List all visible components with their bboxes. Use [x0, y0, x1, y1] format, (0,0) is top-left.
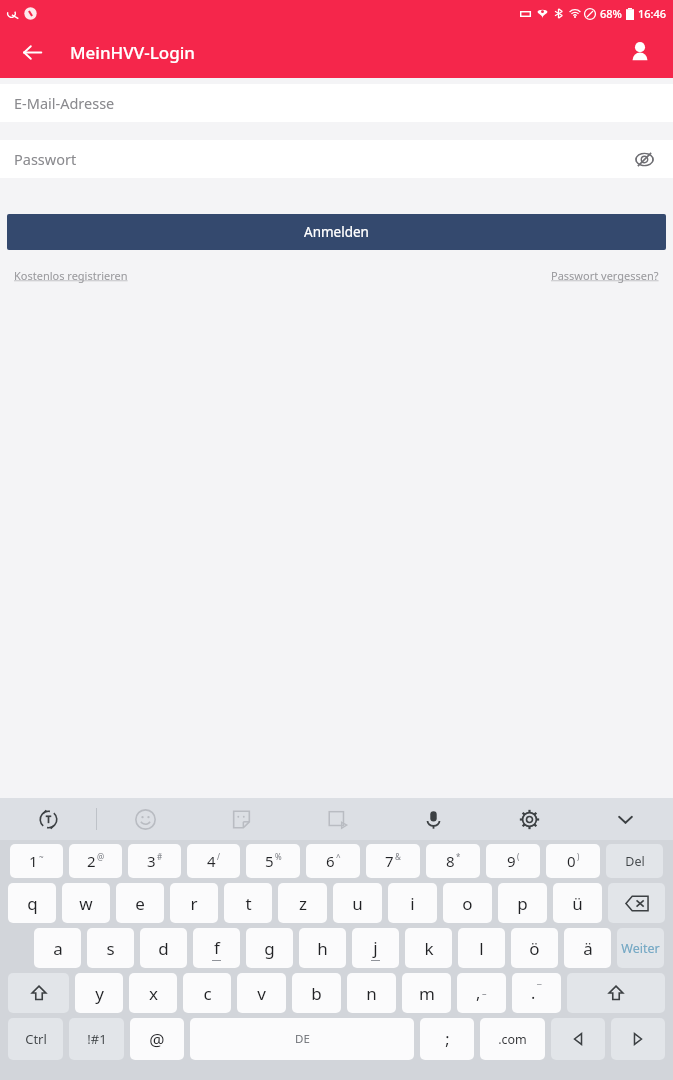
staticText: ^ — [336, 851, 341, 862]
staticText: w — [79, 892, 93, 915]
button[interactable]: k — [405, 928, 452, 968]
staticText: ~ — [39, 851, 44, 862]
button[interactable]: a — [34, 928, 81, 968]
button[interactable]: y — [75, 973, 123, 1013]
button[interactable]: d — [140, 928, 187, 968]
staticText: 68% — [600, 6, 622, 21]
button[interactable]: ö — [511, 928, 558, 968]
staticText: ö — [529, 937, 540, 960]
button[interactable]: Spracheingabe — [385, 798, 481, 840]
staticText: ) — [577, 851, 580, 862]
button[interactable]: 5 — [246, 844, 300, 878]
staticText: . — [531, 982, 536, 1004]
button[interactable]: p — [498, 883, 547, 923]
staticText: ¯ — [537, 982, 542, 994]
button[interactable]: v — [237, 973, 286, 1013]
button[interactable]: o — [443, 883, 492, 923]
button[interactable]: h — [299, 928, 346, 968]
button[interactable]: ü — [553, 883, 602, 923]
button[interactable]: t — [224, 883, 272, 923]
staticText: n — [366, 982, 377, 1005]
staticText: Passwort — [14, 149, 77, 169]
button[interactable]: Ctrl — [8, 1018, 63, 1060]
button[interactable]: Weiter — [617, 928, 664, 968]
staticText: y — [95, 982, 104, 1005]
button[interactable]: , — [457, 973, 506, 1013]
staticText: & — [395, 851, 401, 862]
staticText: s — [106, 937, 115, 960]
button[interactable]: Umschalt — [8, 973, 69, 1013]
button[interactable]: 9 — [486, 844, 540, 878]
button[interactable]: . — [512, 973, 561, 1013]
staticText: DE — [295, 1031, 310, 1047]
button[interactable]: @ — [130, 1018, 184, 1060]
staticText: ; — [445, 1028, 450, 1050]
button[interactable]: 0 — [546, 844, 600, 878]
button[interactable]: .com — [480, 1018, 545, 1060]
button[interactable]: Leertaste — [190, 1018, 414, 1060]
button[interactable]: !#1 — [69, 1018, 124, 1060]
button[interactable]: 8 — [426, 844, 480, 878]
button[interactable]: Anmelden — [7, 214, 666, 250]
staticText: MeinHVV-Login — [70, 41, 195, 64]
button[interactable]: Nach rechts — [611, 1018, 665, 1060]
staticText: 4 — [207, 851, 216, 871]
button[interactable]: Einstellungen — [481, 798, 577, 840]
staticText: r — [190, 892, 198, 915]
staticText: ( — [517, 851, 520, 862]
button[interactable]: 6 — [306, 844, 360, 878]
button[interactable]: 2 — [69, 844, 122, 878]
button[interactable]: Sticker — [193, 798, 289, 840]
button[interactable]: c — [183, 973, 231, 1013]
button[interactable]: s — [87, 928, 134, 968]
button[interactable]: Löschen — [606, 844, 663, 878]
button[interactable]: w — [62, 883, 110, 923]
button[interactable]: ; — [420, 1018, 474, 1060]
button[interactable]: g — [246, 928, 293, 968]
button[interactable]: Zurück — [12, 32, 52, 72]
button[interactable]: b — [292, 973, 341, 1013]
button[interactable]: Tastatur schließen — [577, 798, 673, 840]
button[interactable]: i — [388, 883, 437, 923]
staticText: c — [203, 982, 212, 1005]
button[interactable]: Passwort anzeigen — [629, 144, 659, 174]
button[interactable]: l — [458, 928, 505, 968]
staticText: d — [158, 937, 169, 960]
button[interactable]: Kostenlos registrieren — [14, 268, 128, 283]
button[interactable]: Emoji — [97, 798, 193, 840]
button[interactable]: x — [129, 973, 177, 1013]
staticText: / — [217, 851, 220, 862]
button[interactable]: f — [193, 928, 240, 968]
button[interactable]: r — [170, 883, 218, 923]
staticText: h — [317, 937, 328, 960]
staticText: .com — [498, 1031, 527, 1048]
button[interactable]: e — [116, 883, 164, 923]
staticText: k — [424, 937, 434, 960]
staticText: f — [214, 936, 220, 959]
button[interactable]: Passwort — [0, 140, 673, 178]
button[interactable]: u — [333, 883, 382, 923]
button[interactable]: 3 — [128, 844, 181, 878]
button[interactable]: n — [347, 973, 396, 1013]
button[interactable]: 4 — [187, 844, 240, 878]
button[interactable]: E-Mail-Adresse — [0, 84, 673, 122]
button[interactable]: Übersetzen — [0, 798, 96, 840]
staticText: – — [482, 987, 487, 999]
button[interactable]: GIF — [289, 798, 385, 840]
button[interactable]: 7 — [366, 844, 420, 878]
button[interactable]: j — [352, 928, 399, 968]
button[interactable]: z — [278, 883, 327, 923]
button[interactable]: m — [402, 973, 451, 1013]
button[interactable]: ä — [564, 928, 611, 968]
button[interactable]: Umschalt — [567, 973, 665, 1013]
button[interactable]: Rücktaste — [608, 883, 665, 923]
button[interactable]: Nach links — [551, 1018, 605, 1060]
staticText: u — [352, 892, 363, 915]
staticText: 3 — [147, 851, 156, 871]
button[interactable]: 1 — [10, 844, 63, 878]
button[interactable]: Passwort vergessen? — [551, 268, 659, 283]
button[interactable]: Konto — [619, 31, 661, 73]
staticText: 2 — [87, 851, 96, 871]
button[interactable]: q — [8, 883, 56, 923]
staticText: 16:46 — [638, 6, 667, 21]
